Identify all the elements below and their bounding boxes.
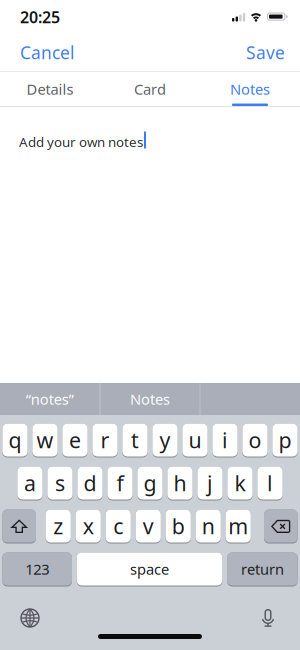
button[interactable]: Next keyboard xyxy=(0,608,40,628)
staticText: r xyxy=(100,426,109,454)
staticText: “notes” xyxy=(26,389,74,409)
button[interactable]: 123 xyxy=(2,552,72,586)
button[interactable]: Shift xyxy=(2,509,36,543)
staticText: i xyxy=(222,426,228,454)
staticText: u xyxy=(188,426,201,454)
staticText: g xyxy=(143,469,156,497)
staticText: 20:25 xyxy=(20,6,60,28)
button[interactable]: h xyxy=(167,466,193,500)
staticText: c xyxy=(113,512,123,540)
staticText: Save xyxy=(246,41,285,64)
button[interactable]: v xyxy=(136,509,161,543)
button[interactable]: return xyxy=(227,552,298,586)
staticText: Card xyxy=(134,79,166,99)
staticText: a xyxy=(24,469,36,497)
button[interactable]: u xyxy=(182,423,208,457)
staticText: y xyxy=(159,426,170,454)
staticText: n xyxy=(202,512,215,540)
staticText: Add your own notes xyxy=(19,133,143,151)
button[interactable]: Card xyxy=(100,72,200,106)
staticText: l xyxy=(267,469,273,497)
staticText: j xyxy=(207,469,213,497)
button[interactable]: Details xyxy=(0,72,100,106)
button[interactable]: s xyxy=(47,466,73,500)
button[interactable]: l xyxy=(257,466,283,500)
button[interactable]: d xyxy=(77,466,103,500)
button[interactable]: y xyxy=(152,423,178,457)
button[interactable]: Notes xyxy=(200,72,300,106)
staticText: Details xyxy=(26,79,73,99)
button[interactable]: g xyxy=(137,466,163,500)
button[interactable]: Dictate xyxy=(261,608,300,627)
staticText: d xyxy=(83,469,96,497)
staticText: w xyxy=(36,426,53,454)
button[interactable]: Save xyxy=(246,41,300,64)
button[interactable]: Notes xyxy=(100,383,199,415)
button[interactable]: space xyxy=(77,552,222,586)
button[interactable]: q xyxy=(2,423,28,457)
staticText: k xyxy=(234,469,245,497)
button[interactable]: f xyxy=(107,466,133,500)
staticText: m xyxy=(228,512,248,540)
button[interactable]: i xyxy=(212,423,238,457)
button[interactable]: n xyxy=(196,509,221,543)
staticText: s xyxy=(55,469,65,497)
button[interactable]: c xyxy=(106,509,131,543)
button[interactable]: Cancel xyxy=(0,41,74,64)
button[interactable]: p xyxy=(272,423,298,457)
staticText: o xyxy=(248,426,261,454)
button[interactable]: Delete xyxy=(264,509,298,543)
staticText: e xyxy=(69,426,81,454)
staticText: return xyxy=(241,559,284,579)
button[interactable]: t xyxy=(122,423,148,457)
button[interactable]: j xyxy=(197,466,223,500)
button[interactable]: w xyxy=(32,423,58,457)
button[interactable]: a xyxy=(17,466,43,500)
staticText: space xyxy=(130,559,169,579)
staticText: Notes xyxy=(230,79,270,99)
button[interactable]: o xyxy=(242,423,268,457)
staticText: v xyxy=(143,512,154,540)
staticText: x xyxy=(83,512,94,540)
button[interactable]: k xyxy=(227,466,253,500)
staticText: f xyxy=(116,469,123,497)
staticText: z xyxy=(53,512,63,540)
staticText: Cancel xyxy=(20,41,74,64)
button[interactable]: e xyxy=(62,423,88,457)
button[interactable]: m xyxy=(226,509,251,543)
button[interactable]: z xyxy=(46,509,71,543)
staticText: 123 xyxy=(25,559,49,579)
staticText: q xyxy=(8,426,21,454)
staticText: t xyxy=(131,426,139,454)
button[interactable]: r xyxy=(92,423,118,457)
staticText: h xyxy=(173,469,186,497)
button[interactable]: b xyxy=(166,509,191,543)
staticText: p xyxy=(278,426,291,454)
button[interactable]: x xyxy=(76,509,101,543)
staticText: Notes xyxy=(130,389,170,409)
staticText: b xyxy=(172,512,185,540)
button[interactable]: “notes” xyxy=(0,383,99,415)
